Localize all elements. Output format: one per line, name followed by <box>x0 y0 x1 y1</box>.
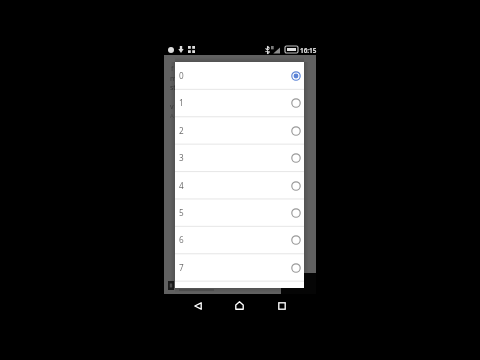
staticText: 4 <box>179 180 184 191</box>
staticText: 5 <box>179 207 184 218</box>
button[interactable]: 3 <box>175 144 304 171</box>
staticText: 2 <box>179 125 184 136</box>
staticText: 3 <box>179 152 184 163</box>
staticText: 7 <box>179 262 184 273</box>
button[interactable]: 6 <box>175 226 304 253</box>
button[interactable]: 0 <box>175 62 304 89</box>
staticText: 16:15 <box>300 46 317 55</box>
button[interactable]: Recents <box>272 296 292 316</box>
button[interactable]: 7 <box>175 254 304 281</box>
button[interactable]: 1 <box>175 89 304 116</box>
button[interactable]: 5 <box>175 199 304 226</box>
button[interactable]: 4 <box>175 172 304 199</box>
button[interactable]: Back <box>188 296 208 316</box>
staticText: 0 <box>179 70 184 81</box>
staticText: st <box>170 83 176 93</box>
staticText: 1 <box>179 97 184 108</box>
staticText: f <box>171 64 174 74</box>
staticText: 6 <box>179 234 184 245</box>
staticText: A <box>170 112 174 120</box>
button[interactable]: 8 <box>175 281 304 288</box>
button[interactable]: Home <box>229 295 249 315</box>
button[interactable]: 2 <box>175 117 304 144</box>
staticText: v <box>170 102 174 112</box>
staticText: m <box>170 74 177 84</box>
